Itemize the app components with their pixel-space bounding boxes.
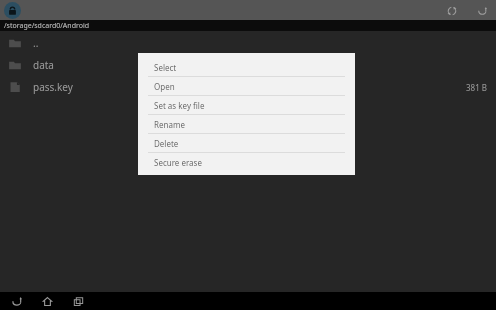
staticText: Set as key file [154,100,205,111]
staticText: Secure erase [154,157,202,168]
button[interactable]: Refresh [442,1,461,20]
button[interactable]: Back [7,292,25,310]
button[interactable]: Undo [472,1,491,20]
staticText: Select [154,62,177,73]
button[interactable]: Delete [138,134,355,153]
button[interactable]: .. [0,32,496,54]
button[interactable]: Select [138,58,355,77]
staticText: .. [33,36,39,50]
staticText: Rename [154,119,185,130]
staticText: Delete [154,138,179,149]
button[interactable]: Open [138,77,355,96]
staticText: 381 B [466,82,488,93]
button[interactable]: Set as key file [138,96,355,115]
button[interactable]: Home [38,292,56,310]
staticText: /storage/sdcard0/Android [4,21,90,31]
button[interactable]: Recent apps [69,292,87,310]
button[interactable]: pass.key [0,76,496,98]
staticText: pass.key [33,80,73,94]
button[interactable]: Rename [138,115,355,134]
staticText: data [33,58,54,72]
button[interactable]: data [0,54,496,76]
button[interactable]: Secure erase [138,153,355,172]
button[interactable]: KeePass app [4,2,21,19]
staticText: Open [154,81,175,92]
